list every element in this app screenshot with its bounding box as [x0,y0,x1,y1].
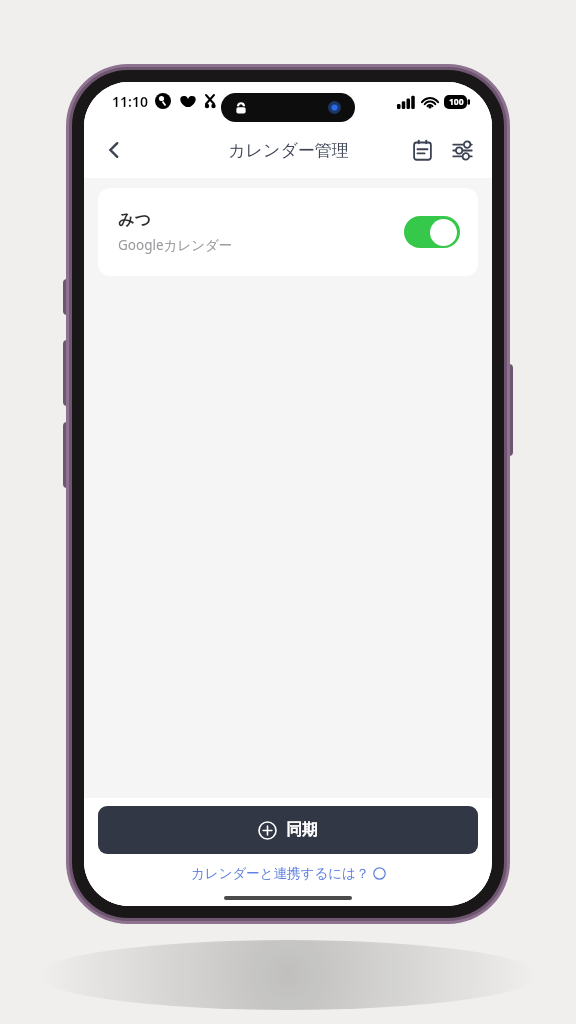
staticText: カレンダーと連携するには？ [191,865,370,882]
staticText: カレンダー管理 [228,140,349,161]
staticText: 11:10 [112,92,148,111]
staticText: Googleカレンダー [118,236,233,254]
staticText: 100 [449,96,464,108]
button[interactable]: Settings [442,130,482,170]
button[interactable]: Notes [402,130,442,170]
button[interactable]: Back [92,128,136,172]
button[interactable]: みつ [98,188,478,276]
button[interactable]: カレンダーと連携するには？ [191,865,386,882]
staticText: 同期 [286,820,318,840]
button[interactable]: Toggle calendar sync [404,216,460,248]
staticText: みつ [118,210,151,230]
button[interactable]: 同期 [98,806,478,854]
